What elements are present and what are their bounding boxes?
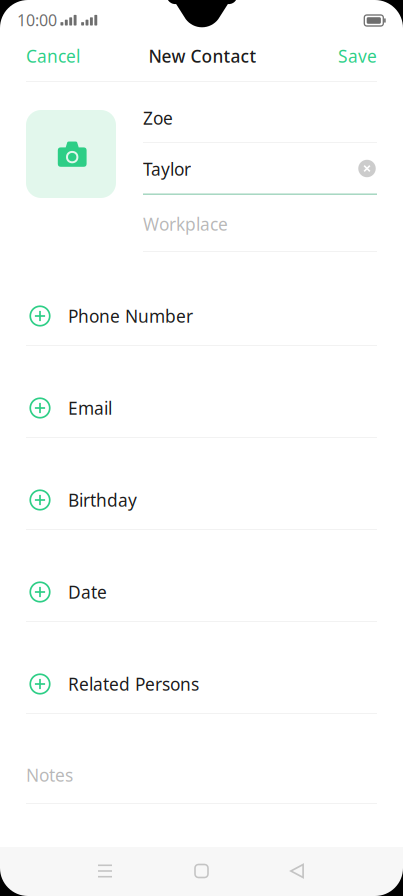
button[interactable]: Phone Number	[0, 270, 403, 362]
staticText: Phone Number	[68, 304, 193, 327]
button[interactable]: Birthday	[0, 454, 403, 546]
button[interactable]: Related Persons	[0, 638, 403, 730]
staticText: New Contact	[148, 44, 256, 67]
staticText: Email	[68, 396, 112, 419]
staticText: Notes	[26, 763, 73, 786]
staticText: Date	[68, 580, 107, 603]
button[interactable]: Zoe	[143, 98, 377, 138]
button[interactable]: Add photo	[26, 110, 116, 198]
staticText: Zoe	[143, 106, 173, 129]
button[interactable]: Taylor	[143, 146, 377, 192]
button[interactable]: Save	[285, 34, 403, 78]
button[interactable]: Home	[177, 846, 226, 895]
button[interactable]: Workplace	[143, 199, 377, 249]
staticText: Save	[338, 44, 377, 67]
button[interactable]: Clear text	[348, 150, 386, 187]
staticText: Birthday	[68, 488, 137, 511]
button[interactable]: Date	[0, 546, 403, 638]
staticText: 10:00	[17, 9, 57, 31]
button[interactable]: Cancel	[0, 34, 118, 78]
button[interactable]: Back	[272, 846, 322, 896]
staticText: Workplace	[143, 212, 228, 235]
staticText: Taylor	[143, 157, 191, 180]
button[interactable]: Email	[0, 362, 403, 454]
button[interactable]: Notes	[0, 735, 403, 815]
button[interactable]: Recents	[80, 846, 130, 895]
staticText: Related Persons	[68, 672, 199, 695]
staticText: Cancel	[26, 44, 80, 67]
